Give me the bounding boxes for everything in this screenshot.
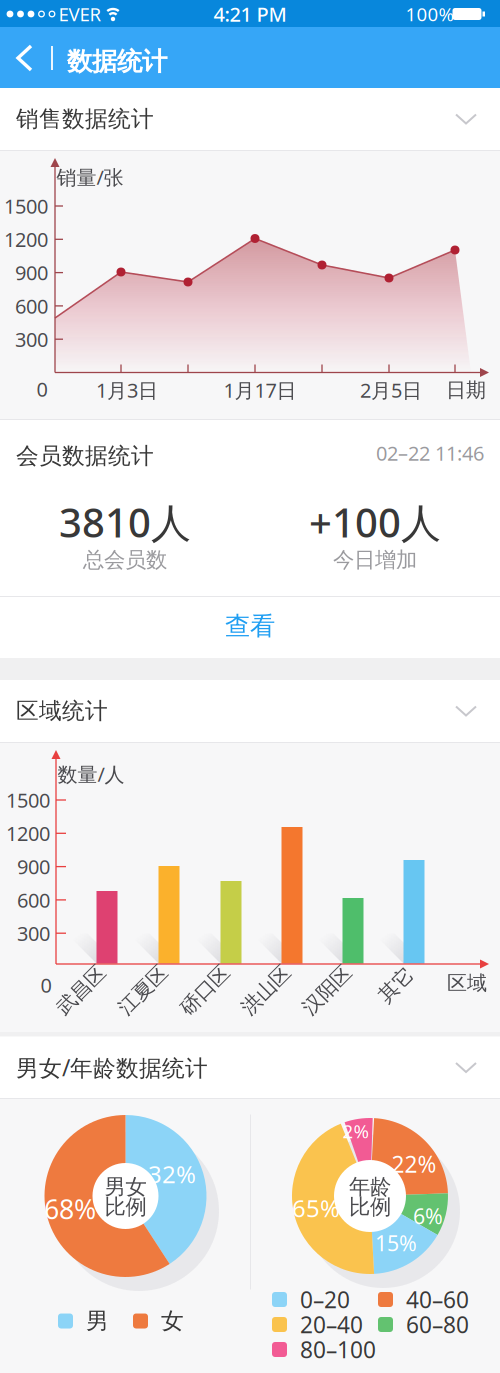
staticText: 数量/人 — [57, 761, 124, 787]
staticText: 女 — [161, 1307, 184, 1335]
staticText: 2月5日 — [360, 377, 422, 403]
staticText: 900 — [17, 853, 50, 880]
staticText: 1200 — [4, 226, 48, 253]
staticText: 2% — [342, 1119, 369, 1143]
staticText: 总会员数 — [83, 547, 167, 573]
staticText: 其它 — [376, 973, 416, 997]
staticText: 男女/年龄数据统计 — [16, 1052, 208, 1082]
staticText: EVER — [58, 2, 101, 26]
staticText: 0–20 — [300, 1284, 350, 1314]
staticText: 22% — [391, 1149, 436, 1179]
staticText: 300 — [15, 326, 48, 352]
staticText: 60–80 — [406, 1309, 469, 1339]
staticText: 40–60 — [406, 1284, 469, 1314]
staticText: 今日增加 — [333, 547, 417, 573]
staticText: 区域 — [447, 971, 487, 995]
staticText: 男 — [86, 1307, 109, 1335]
staticText: 0 — [40, 972, 51, 998]
staticText: 15% — [375, 1229, 417, 1257]
staticText: 6% — [413, 1202, 443, 1230]
staticText: 300 — [17, 920, 50, 946]
staticText: +100人 — [309, 495, 441, 548]
staticText: 1500 — [4, 193, 48, 219]
staticText: 男女 — [104, 1174, 146, 1200]
staticText: 900 — [15, 259, 48, 286]
staticText: 3810人 — [59, 495, 191, 548]
staticText: 销售数据统计 — [16, 105, 154, 133]
staticText: 汉阳区 — [297, 978, 357, 1002]
staticText: 4:21 PM — [213, 1, 286, 27]
staticText: 硚口区 — [175, 978, 235, 1002]
staticText: 600 — [17, 887, 50, 913]
staticText: 江夏区 — [113, 978, 173, 1002]
staticText: 区域统计 — [16, 697, 108, 725]
staticText: 65% — [292, 1192, 340, 1224]
staticText: 销量/张 — [56, 164, 123, 190]
staticText: 68% — [44, 1191, 96, 1227]
staticText: 0 — [36, 376, 47, 402]
staticText: 洪山区 — [236, 978, 296, 1002]
staticText: 数据统计 — [67, 46, 167, 77]
staticText: 1500 — [6, 787, 50, 813]
staticText: 32% — [148, 1158, 196, 1190]
staticText: 1200 — [6, 820, 50, 847]
staticText: 查看 — [225, 610, 275, 641]
staticText: 80–100 — [300, 1334, 376, 1364]
staticText: 比例 — [349, 1194, 391, 1220]
staticText: 600 — [15, 293, 48, 319]
staticText: 比例 — [104, 1194, 146, 1220]
staticText: 武昌区 — [51, 978, 111, 1002]
staticText: 年龄 — [349, 1174, 391, 1200]
staticText: 日期 — [446, 378, 486, 402]
staticText: 会员数据统计 — [16, 442, 154, 470]
staticText: 02–22 11:46 — [376, 440, 484, 466]
staticText: 100% — [405, 2, 454, 26]
staticText: 20–40 — [300, 1309, 363, 1339]
staticText: 1月3日 — [96, 377, 158, 403]
staticText: 1月17日 — [223, 377, 296, 403]
